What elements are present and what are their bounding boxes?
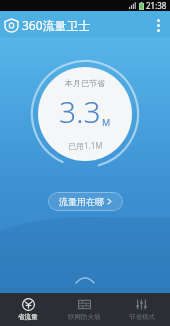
staticText: 省流量 (18, 313, 38, 321)
button[interactable]: 节省模式 (113, 293, 170, 326)
staticText: 本月已节省 (65, 78, 105, 88)
staticText: 已用1.1M (68, 140, 103, 151)
button[interactable]: 省流量 (0, 293, 56, 326)
staticText: 3.3 (59, 91, 101, 132)
staticText: 21:38 (146, 0, 167, 11)
button[interactable]: More options (146, 13, 170, 37)
staticText: M (102, 116, 111, 128)
staticText: 联网防火墙 (68, 313, 101, 321)
staticText: 流量用在哪 (59, 196, 104, 207)
button[interactable]: Expand (72, 273, 98, 285)
button[interactable]: 流量用在哪 (48, 192, 123, 211)
staticText: 节省模式 (129, 313, 155, 321)
staticText: 360流量卫士 (22, 17, 91, 33)
button[interactable]: 联网防火墙 (56, 293, 113, 326)
